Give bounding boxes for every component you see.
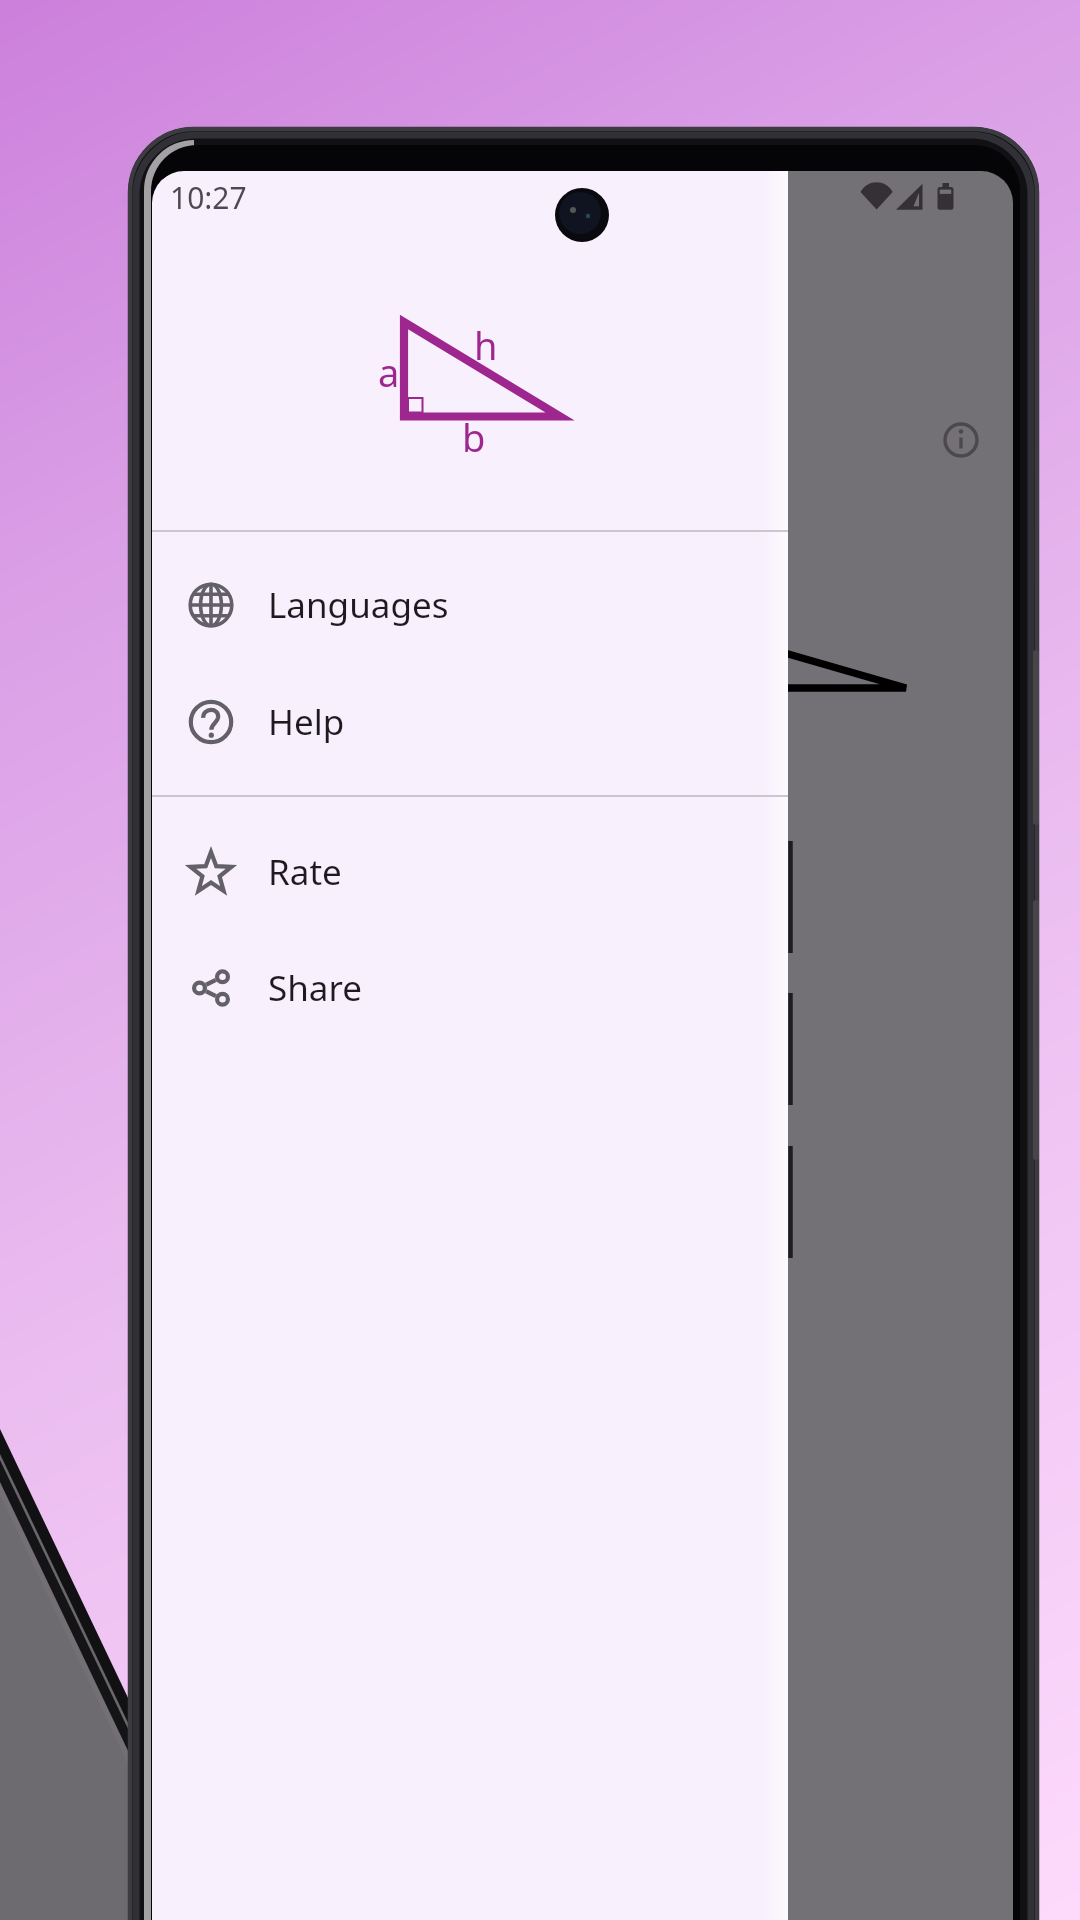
staticText: 10:27 xyxy=(170,177,247,218)
staticText: a xyxy=(378,346,400,398)
button[interactable]: Rate xyxy=(152,814,788,930)
button[interactable]: Info xyxy=(925,404,997,476)
staticText: h xyxy=(474,319,498,371)
staticText: Help xyxy=(268,698,345,746)
staticText: Share xyxy=(268,964,362,1012)
staticText: Rate xyxy=(268,848,342,896)
staticText: Languages xyxy=(268,581,449,629)
button[interactable]: Languages xyxy=(152,547,788,663)
button[interactable]: Info xyxy=(152,171,1013,1920)
staticText: b xyxy=(462,411,486,463)
button[interactable]: Share xyxy=(152,930,788,1046)
button[interactable]: Help xyxy=(152,664,788,780)
